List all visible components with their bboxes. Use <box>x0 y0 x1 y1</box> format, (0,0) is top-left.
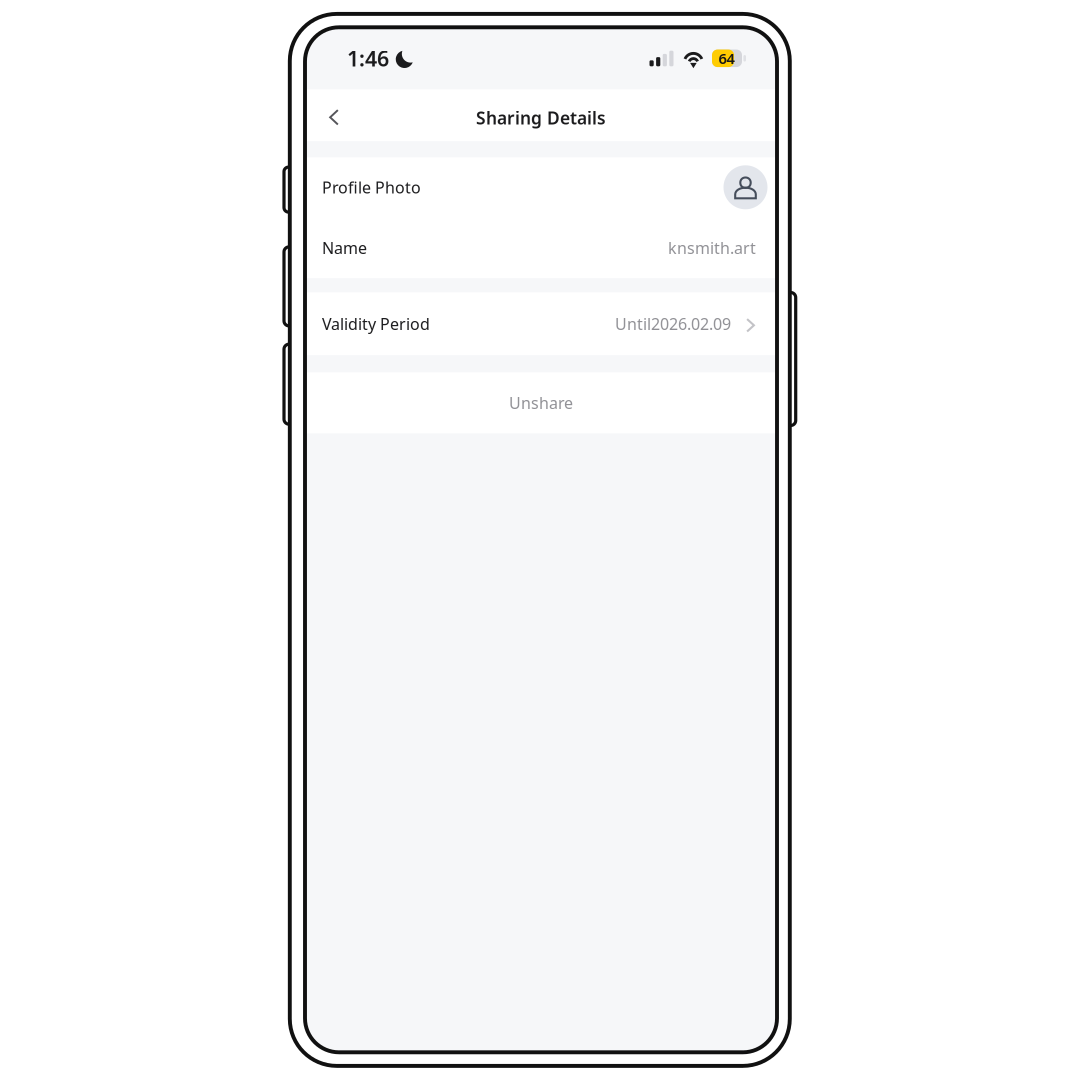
staticText: Profile Photo <box>322 177 421 198</box>
staticText: 64 <box>718 49 734 68</box>
button[interactable]: Validity Period <box>305 292 777 355</box>
button[interactable]: Unshare <box>305 372 777 433</box>
button[interactable]: Name <box>305 217 777 278</box>
staticText: Name <box>322 237 367 258</box>
button[interactable]: Profile Photo <box>305 157 777 217</box>
staticText: Sharing Details <box>476 106 606 129</box>
staticText: Until2026.02.09 <box>615 313 731 334</box>
staticText: Validity Period <box>322 313 430 334</box>
staticText: knsmith.art <box>668 237 756 258</box>
staticText: 1:46 <box>347 44 389 72</box>
button[interactable]: Back <box>311 94 357 140</box>
staticText: Unshare <box>509 392 573 413</box>
